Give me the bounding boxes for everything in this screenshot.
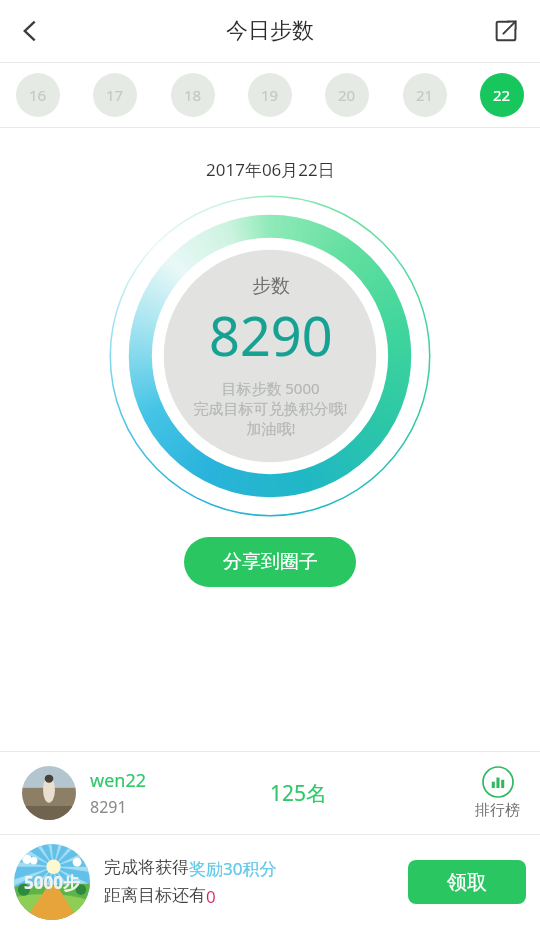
staticText: 步数 [252,274,290,298]
staticText: 分享到圈子 [223,550,318,574]
button[interactable]: 16 [16,73,60,117]
button[interactable]: 分享到圈子 [184,537,356,587]
staticText: 0 [206,885,216,908]
button[interactable]: 21 [403,73,447,117]
staticText: 完成将获得 [104,857,189,878]
staticText: 今日步数 [226,17,314,45]
button[interactable]: 18 [171,73,215,117]
staticText: 2017年06月22日 [206,158,335,181]
staticText: 16 [29,85,47,105]
staticText: 18 [184,85,202,105]
button[interactable]: 领取 [408,860,526,904]
staticText: 20 [338,85,356,105]
staticText: wen22 [90,768,147,793]
button[interactable]: 22 [480,73,524,117]
button[interactable]: 19 [248,73,292,117]
staticText: 奖励30积分 [189,857,277,880]
staticText: 距离目标还有 [104,885,206,906]
staticText: 8290 [209,298,333,372]
staticText: 19 [261,85,279,105]
staticText: 125名 [270,779,328,808]
staticText: 领取 [447,870,487,895]
staticText: 目标步数 5000 [221,378,320,398]
button[interactable]: wen22 [0,752,540,834]
staticText: 排行榜 [475,801,520,820]
button[interactable]: 排行榜 [475,766,520,820]
staticText: 5000步 [24,871,80,894]
staticText: 22 [493,85,511,105]
button[interactable]: Back [4,5,56,57]
button[interactable]: Share [480,5,532,57]
staticText: 完成目标可兑换积分哦! [193,398,348,418]
staticText: 加油哦! [246,418,296,438]
button[interactable]: 20 [325,73,369,117]
button[interactable]: 17 [93,73,137,117]
staticText: 17 [106,85,124,105]
staticText: 21 [416,85,434,105]
staticText: 8291 [90,796,127,818]
